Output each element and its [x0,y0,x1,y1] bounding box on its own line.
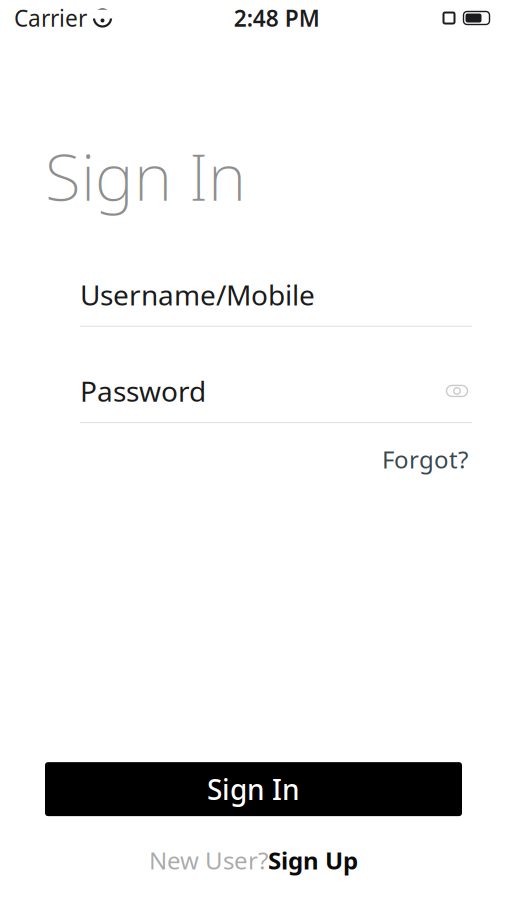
button[interactable]: Sign In [45,762,462,816]
staticText: New User? [149,844,268,876]
staticText: Sign In [207,770,300,808]
staticText: Carrier [14,3,87,33]
button[interactable]: Forgot? [378,437,472,481]
staticText: Forgot? [382,443,468,475]
staticText: Sign In [45,132,246,219]
button[interactable]: New User? [139,838,368,882]
button[interactable]: Show password [442,380,472,402]
staticText: Username/Mobile [80,276,315,313]
staticText: 2:48 PM [234,3,320,33]
staticText: Sign Up [268,844,358,876]
staticText: Password [80,372,206,410]
